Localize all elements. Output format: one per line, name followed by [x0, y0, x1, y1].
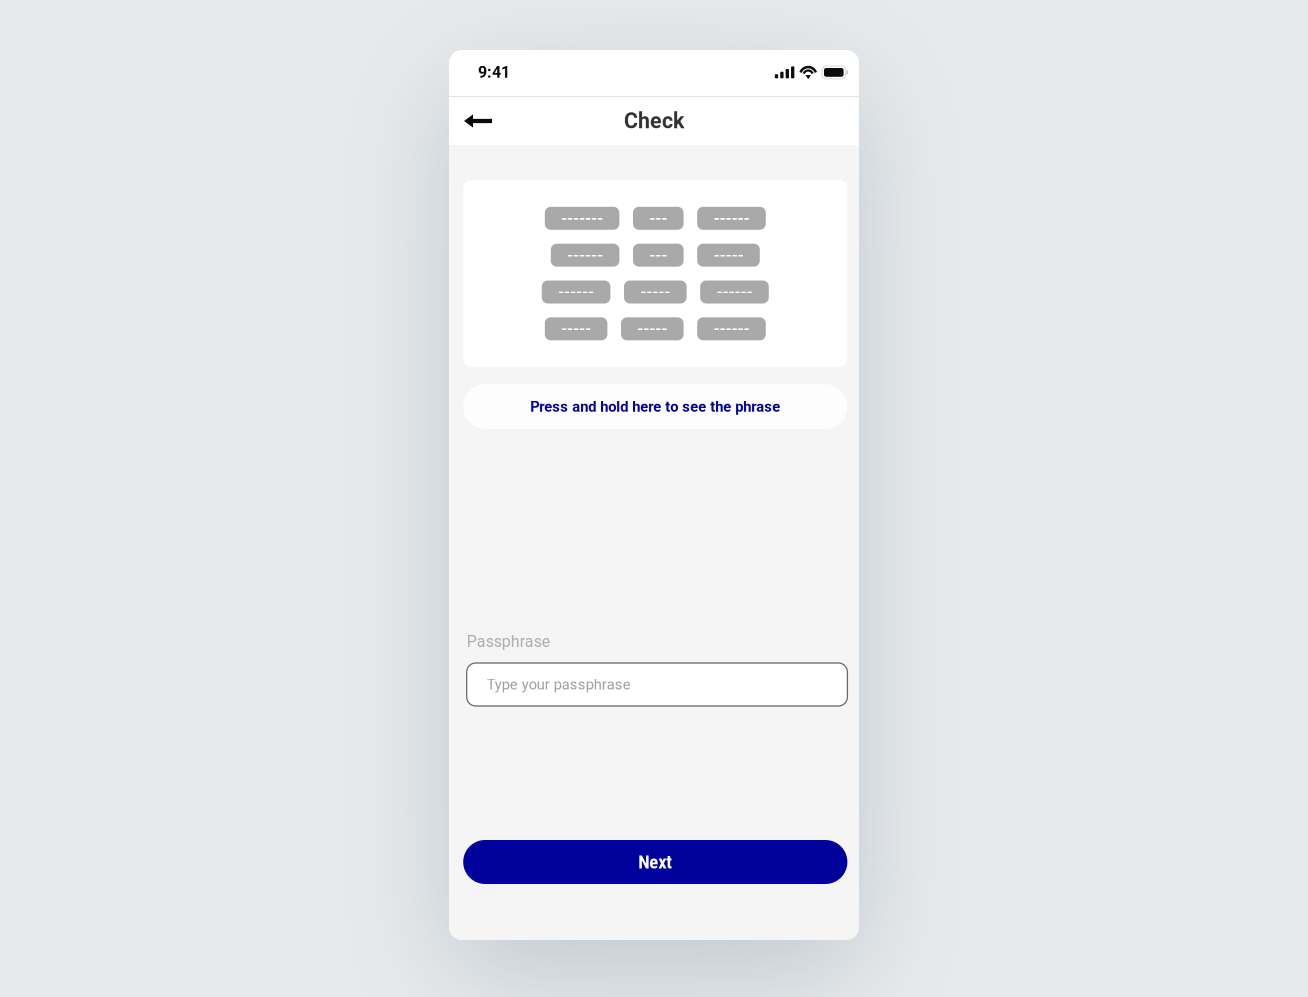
staticText: ----- [637, 319, 667, 338]
staticText: Check [624, 108, 684, 133]
button[interactable]: Type your passphrase [467, 663, 847, 706]
staticText: ------ [558, 283, 594, 301]
staticText: Press and hold here to see the phrase [530, 398, 780, 415]
staticText: ----- [561, 319, 591, 338]
staticText: Type your passphrase [487, 676, 631, 693]
staticText: ------ [713, 209, 749, 228]
staticText: 9:41 [478, 63, 510, 82]
button[interactable]: Press and hold here to see the phrase [463, 384, 847, 429]
staticText: Passphrase [467, 632, 550, 651]
button[interactable]: Back [454, 100, 502, 142]
button[interactable]: Next [463, 840, 847, 884]
staticText: ----- [640, 283, 670, 301]
staticText: ------ [713, 319, 749, 338]
staticText: ------ [567, 246, 603, 265]
staticText: Next [638, 851, 672, 873]
staticText: --- [649, 209, 667, 228]
staticText: --- [649, 246, 667, 265]
staticText: ----- [713, 246, 743, 265]
staticText: ------ [716, 283, 752, 301]
staticText: ------- [561, 209, 603, 228]
